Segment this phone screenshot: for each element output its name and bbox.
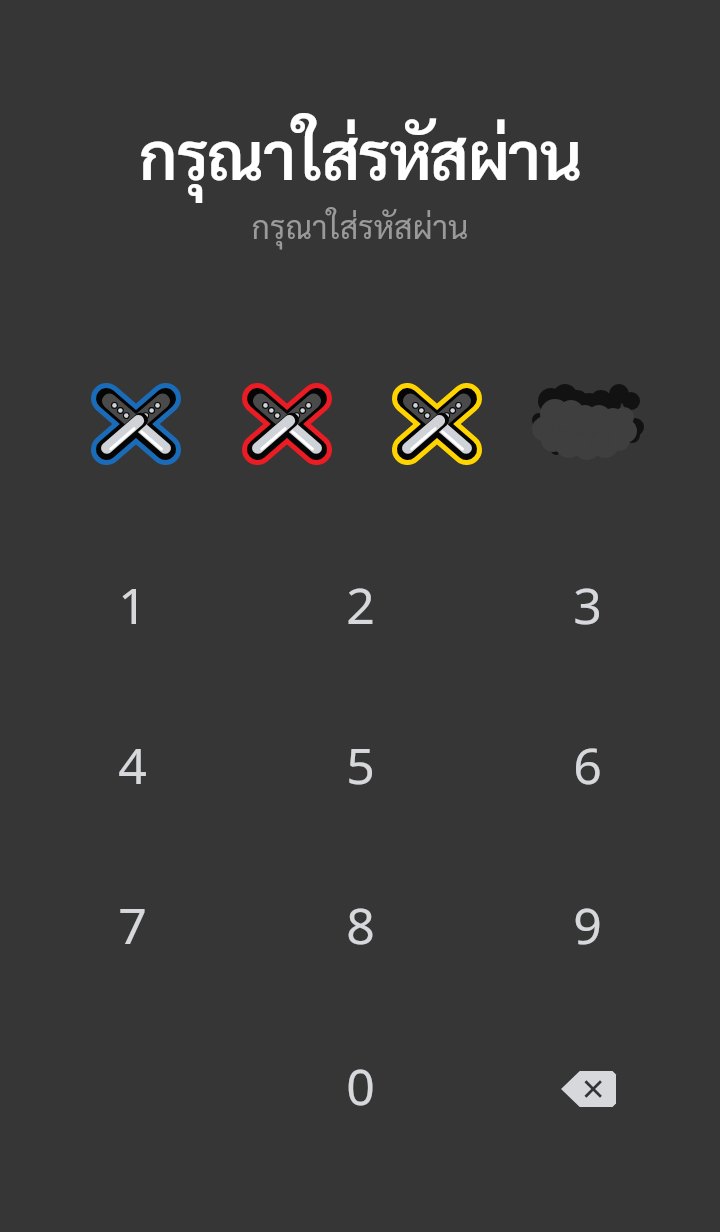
staticText: 7 bbox=[118, 891, 147, 959]
staticText: 1 bbox=[118, 571, 147, 639]
staticText: 4 bbox=[118, 731, 147, 799]
staticText: กรุณาใส่รหัสผ่าน bbox=[0, 110, 720, 196]
button[interactable]: 5 bbox=[265, 690, 455, 840]
staticText: กรุณาใส่รหัสผ่าน bbox=[0, 205, 720, 247]
staticText: 2 bbox=[346, 571, 375, 639]
button[interactable]: 7 bbox=[37, 850, 227, 1000]
button[interactable]: 0 bbox=[265, 1011, 455, 1161]
button[interactable]: 2 bbox=[265, 530, 455, 680]
button[interactable]: Backspace bbox=[492, 1011, 682, 1161]
button[interactable]: 9 bbox=[492, 850, 682, 1000]
button[interactable]: 6 bbox=[492, 690, 682, 840]
staticText: 0 bbox=[346, 1052, 375, 1120]
staticText: 3 bbox=[573, 571, 602, 639]
button[interactable]: 4 bbox=[37, 690, 227, 840]
staticText: 5 bbox=[346, 731, 375, 799]
staticText: 6 bbox=[573, 731, 602, 799]
button[interactable]: 8 bbox=[265, 850, 455, 1000]
button[interactable]: 1 bbox=[37, 530, 227, 680]
button[interactable]: 3 bbox=[492, 530, 682, 680]
staticText: 8 bbox=[346, 891, 375, 959]
staticText: 9 bbox=[573, 891, 602, 959]
